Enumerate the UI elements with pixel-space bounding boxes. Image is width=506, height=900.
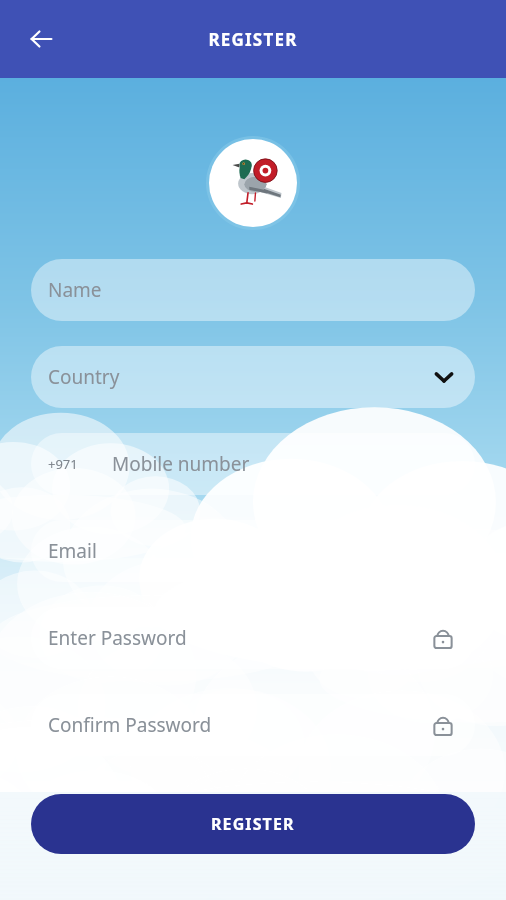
staticText: Email (48, 538, 455, 564)
button[interactable]: Name (31, 259, 475, 321)
staticText: Country (48, 364, 433, 390)
staticText: Name (48, 277, 455, 303)
button[interactable]: Email (31, 520, 475, 582)
button[interactable]: Enter Password (31, 607, 475, 669)
staticText: REGISTER (208, 28, 298, 51)
staticText: +971 (48, 455, 78, 473)
button[interactable]: Back (18, 16, 64, 62)
button[interactable]: REGISTER (31, 794, 475, 854)
staticText: Enter Password (48, 625, 431, 651)
staticText: Confirm Password (48, 712, 431, 738)
staticText: Mobile number (112, 451, 455, 477)
staticText: REGISTER (211, 813, 295, 835)
button[interactable]: +971 (31, 433, 475, 495)
button[interactable]: Confirm Password (31, 694, 475, 756)
button[interactable]: Country (31, 346, 475, 408)
